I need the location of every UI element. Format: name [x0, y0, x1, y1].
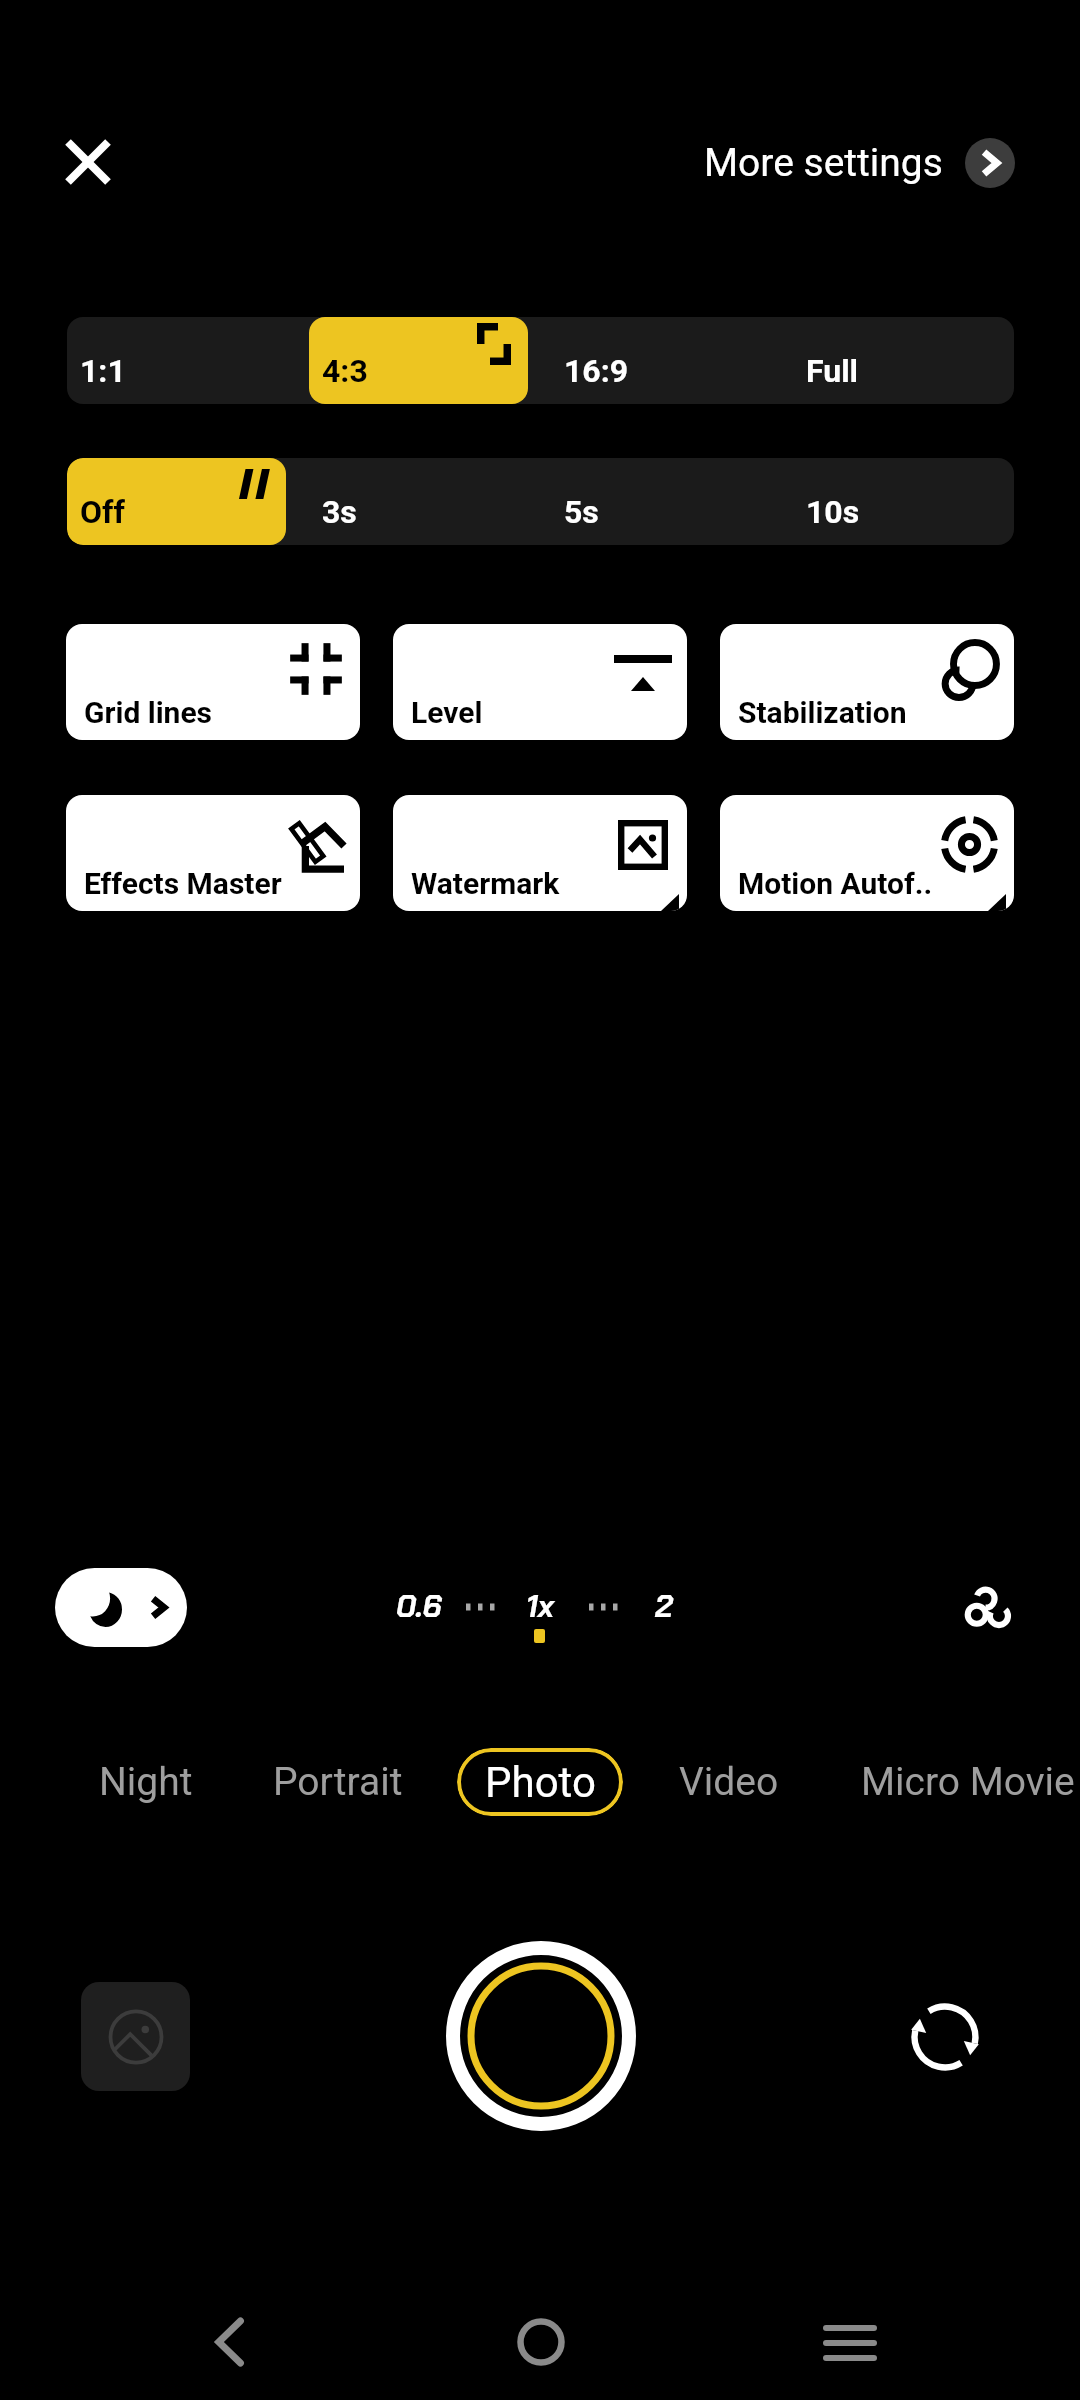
- button[interactable]: Motion Autof..: [720, 795, 1014, 911]
- button[interactable]: Home: [481, 2282, 601, 2400]
- staticText: 16:9: [564, 352, 629, 390]
- button[interactable]: 4:3: [309, 317, 551, 404]
- staticText: Watermark: [411, 866, 560, 901]
- button[interactable]: Recents: [790, 2283, 910, 2400]
- button[interactable]: Micro Movie: [839, 1748, 1080, 1816]
- button[interactable]: 2: [637, 1576, 717, 1636]
- staticText: Off: [80, 493, 125, 531]
- button[interactable]: Grid lines: [66, 624, 360, 740]
- button[interactable]: 3s: [309, 458, 551, 545]
- staticText: Motion Autof..: [738, 866, 933, 901]
- staticText: 10s: [806, 493, 860, 531]
- button[interactable]: Night: [77, 1748, 327, 1816]
- button[interactable]: Close: [48, 122, 128, 202]
- button[interactable]: 0.6: [378, 1576, 458, 1636]
- staticText: 4:3: [322, 352, 368, 390]
- button[interactable]: Full: [793, 317, 1014, 404]
- staticText: 3s: [322, 493, 357, 531]
- staticText: 5s: [564, 493, 599, 531]
- button[interactable]: Portrait: [251, 1748, 501, 1816]
- button[interactable]: Shutter: [436, 1931, 646, 2141]
- button[interactable]: Filters: [946, 1568, 1026, 1648]
- button[interactable]: Off: [67, 458, 309, 545]
- staticText: Grid lines: [84, 695, 213, 730]
- button[interactable]: Night mode: [55, 1568, 187, 1647]
- staticText: Full: [806, 352, 859, 390]
- staticText: Photo: [485, 1758, 596, 1807]
- staticText: More settings: [704, 140, 943, 186]
- button[interactable]: Stabilization: [720, 624, 1014, 740]
- button[interactable]: 10s: [793, 458, 1014, 545]
- staticText: Portrait: [273, 1759, 403, 1805]
- button[interactable]: Switch camera: [901, 1993, 989, 2081]
- button[interactable]: Level: [393, 624, 687, 740]
- staticText: Stabilization: [738, 695, 907, 730]
- staticText: 2: [655, 1586, 673, 1626]
- staticText: 0.6: [396, 1586, 442, 1626]
- staticText: 1:1: [80, 352, 126, 390]
- staticText: Video: [679, 1759, 779, 1805]
- staticText: Level: [411, 695, 483, 730]
- button[interactable]: More settings: [690, 128, 1020, 198]
- button[interactable]: Effects Master: [66, 795, 360, 911]
- staticText: Micro Movie: [861, 1759, 1075, 1805]
- staticText: 1x: [526, 1586, 555, 1626]
- button[interactable]: 16:9: [551, 317, 793, 404]
- button[interactable]: Video: [657, 1748, 907, 1816]
- staticText: Night: [99, 1759, 193, 1805]
- button[interactable]: 1x: [508, 1576, 588, 1636]
- button[interactable]: 5s: [551, 458, 793, 545]
- button[interactable]: 1:1: [67, 317, 309, 404]
- button[interactable]: Back: [167, 2282, 287, 2400]
- button[interactable]: Watermark: [393, 795, 687, 911]
- button[interactable]: Photo: [457, 1748, 623, 1816]
- staticText: Effects Master: [84, 866, 282, 901]
- button[interactable]: Gallery: [81, 1982, 190, 2091]
